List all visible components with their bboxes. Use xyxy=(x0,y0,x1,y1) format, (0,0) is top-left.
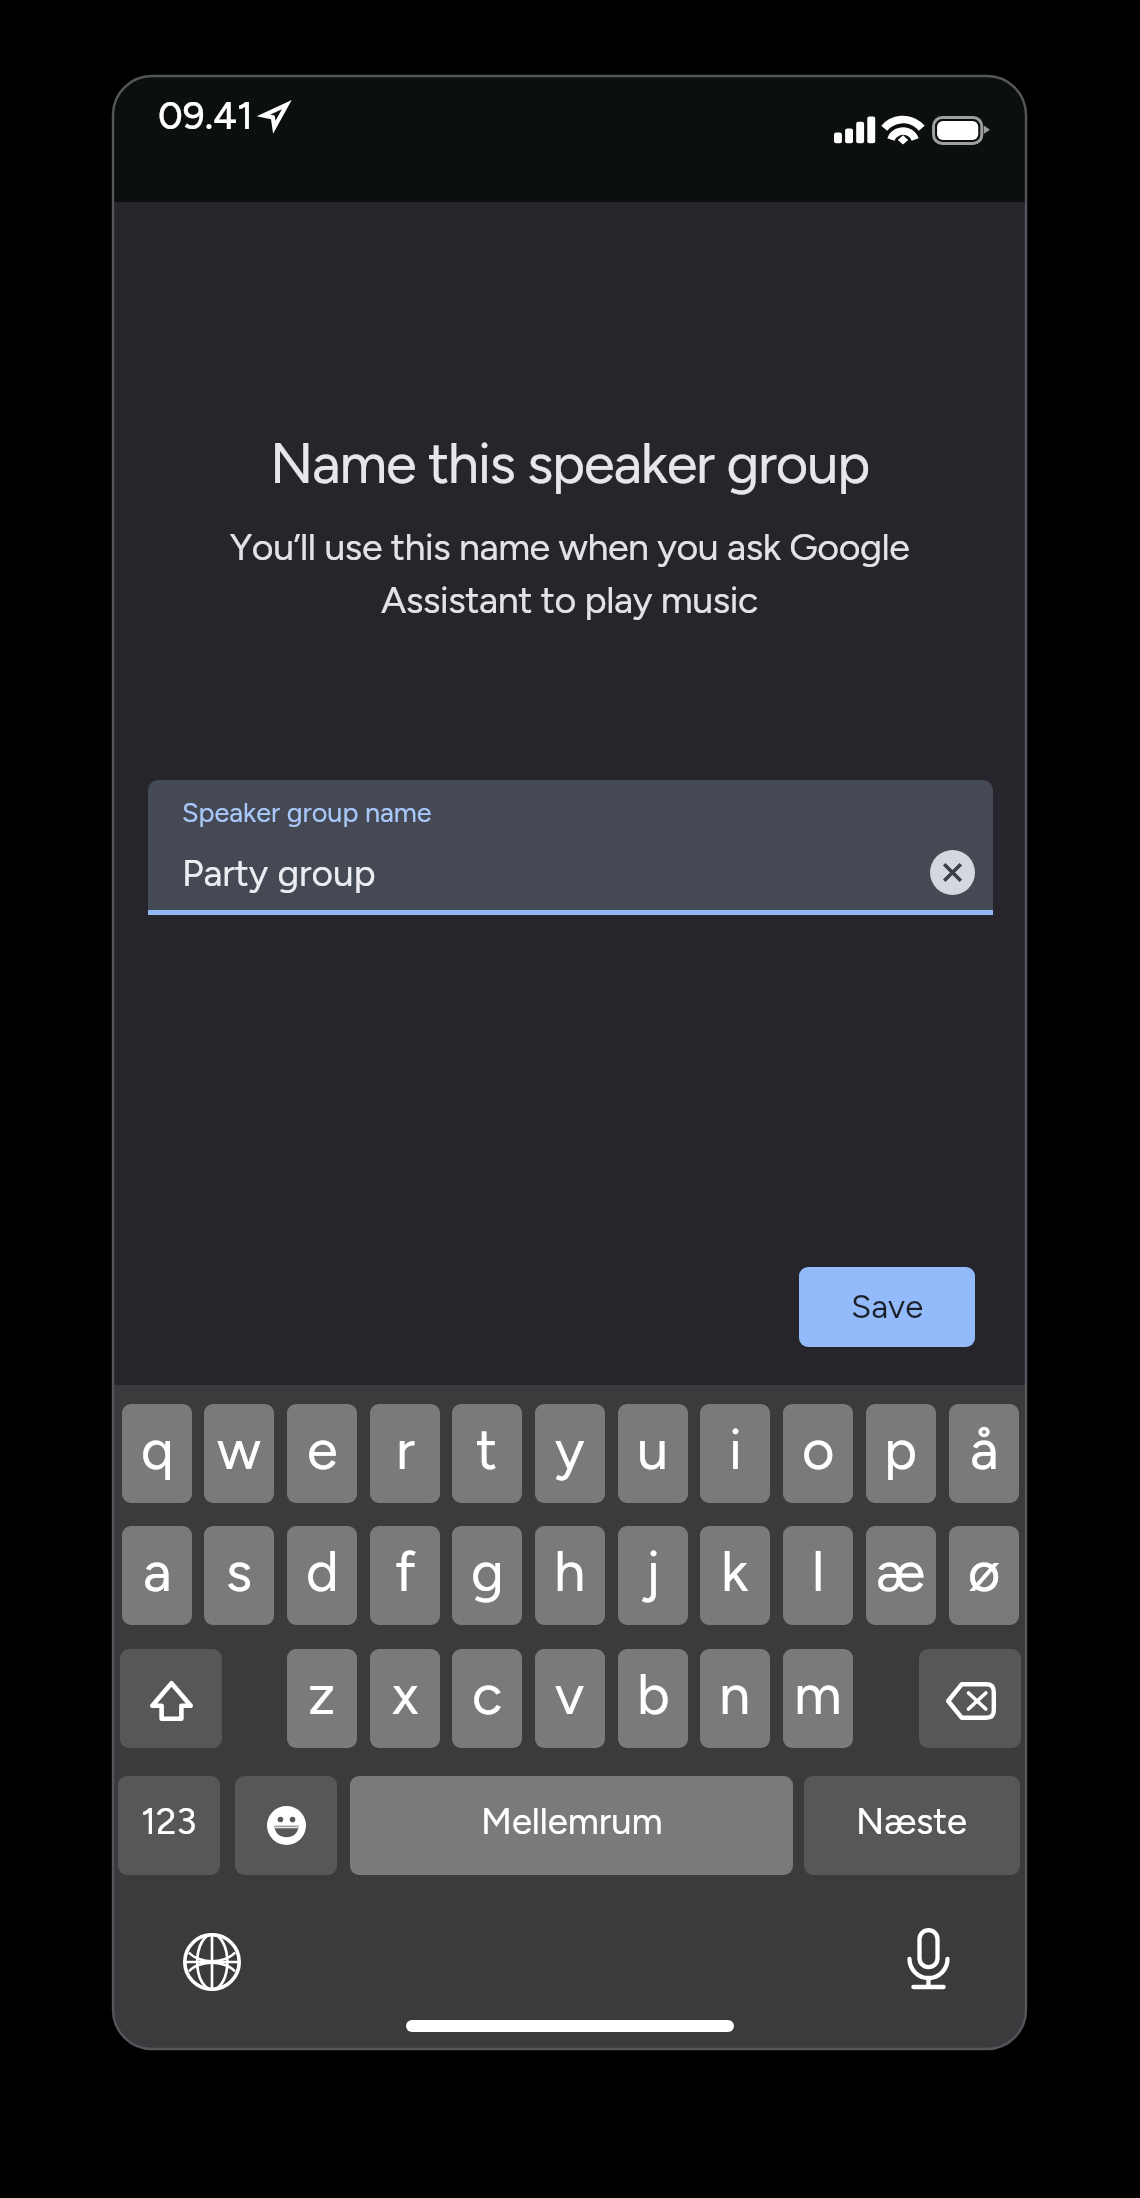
staticText: y xyxy=(555,1416,585,1483)
button[interactable]: a xyxy=(122,1526,192,1625)
staticText: n xyxy=(719,1661,751,1728)
staticText: p xyxy=(884,1416,918,1483)
button[interactable]: i xyxy=(700,1404,770,1503)
button[interactable]: Voice input xyxy=(886,1916,970,2000)
button[interactable]: d xyxy=(287,1526,357,1625)
staticText: å xyxy=(970,1416,999,1483)
button[interactable]: o xyxy=(783,1404,853,1503)
button[interactable]: Clear text xyxy=(930,850,975,895)
button[interactable]: t xyxy=(452,1404,522,1503)
staticText: Speaker group name xyxy=(182,796,432,828)
staticText: h xyxy=(554,1538,586,1605)
button[interactable]: Save xyxy=(799,1267,975,1347)
staticText: c xyxy=(472,1661,503,1728)
button[interactable]: z xyxy=(287,1649,357,1748)
button[interactable]: b xyxy=(618,1649,688,1748)
staticText: Næste xyxy=(856,1799,968,1843)
button[interactable]: r xyxy=(370,1404,440,1503)
button[interactable]: Mellemrum xyxy=(350,1776,793,1875)
button[interactable]: s xyxy=(204,1526,274,1625)
button[interactable]: c xyxy=(452,1649,522,1748)
button[interactable]: å xyxy=(949,1404,1019,1503)
staticText: ø xyxy=(968,1538,1001,1605)
staticText: i xyxy=(729,1416,742,1483)
button[interactable]: Shift xyxy=(120,1649,222,1748)
staticText: b xyxy=(637,1661,670,1728)
staticText: Party group xyxy=(182,851,376,895)
button[interactable]: n xyxy=(700,1649,770,1748)
staticText: a xyxy=(143,1538,172,1605)
staticText: z xyxy=(308,1661,336,1728)
button[interactable]: u xyxy=(618,1404,688,1503)
staticText: x xyxy=(392,1661,419,1728)
staticText: o xyxy=(802,1416,835,1483)
button[interactable]: x xyxy=(370,1649,440,1748)
button[interactable]: j xyxy=(618,1526,688,1625)
staticText: 09.41 xyxy=(158,92,254,138)
button[interactable]: g xyxy=(452,1526,522,1625)
button[interactable]: e xyxy=(287,1404,357,1503)
staticText: Name this speaker group xyxy=(113,430,1026,497)
staticText: k xyxy=(721,1538,749,1605)
staticText: æ xyxy=(876,1538,926,1605)
staticText: e xyxy=(307,1416,338,1483)
button[interactable]: 123 xyxy=(118,1776,220,1875)
staticText: Mellemrum xyxy=(481,1799,663,1843)
staticText: r xyxy=(396,1416,415,1483)
staticText: v xyxy=(555,1661,585,1728)
button[interactable]: Backspace xyxy=(919,1649,1021,1748)
staticText: Save xyxy=(851,1287,924,1327)
button[interactable]: Speaker group name xyxy=(148,780,993,915)
staticText: s xyxy=(226,1538,253,1605)
button[interactable]: Næste xyxy=(804,1776,1020,1875)
button[interactable]: h xyxy=(535,1526,605,1625)
staticText: w xyxy=(217,1416,261,1483)
button[interactable]: f xyxy=(370,1526,440,1625)
button[interactable]: v xyxy=(535,1649,605,1748)
staticText: t xyxy=(476,1416,498,1483)
staticText: 123 xyxy=(141,1799,197,1843)
staticText: f xyxy=(395,1538,416,1605)
button[interactable]: Emoji xyxy=(235,1776,337,1875)
button[interactable]: k xyxy=(700,1526,770,1625)
staticText: l xyxy=(812,1538,825,1605)
button[interactable]: y xyxy=(535,1404,605,1503)
staticText: q xyxy=(141,1416,174,1483)
button[interactable]: Change keyboard language xyxy=(170,1920,254,2004)
button[interactable]: m xyxy=(783,1649,853,1748)
button[interactable]: q xyxy=(122,1404,192,1503)
staticText: u xyxy=(637,1416,669,1483)
button[interactable]: ø xyxy=(949,1526,1019,1625)
button[interactable]: p xyxy=(866,1404,936,1503)
staticText: m xyxy=(794,1661,842,1728)
staticText: d xyxy=(306,1538,339,1605)
staticText: You’ll use this name when you ask Google… xyxy=(113,524,1026,622)
button[interactable]: w xyxy=(204,1404,274,1503)
button[interactable]: æ xyxy=(866,1526,936,1625)
button[interactable]: l xyxy=(783,1526,853,1625)
staticText: g xyxy=(471,1538,504,1605)
staticText: j xyxy=(645,1538,661,1605)
